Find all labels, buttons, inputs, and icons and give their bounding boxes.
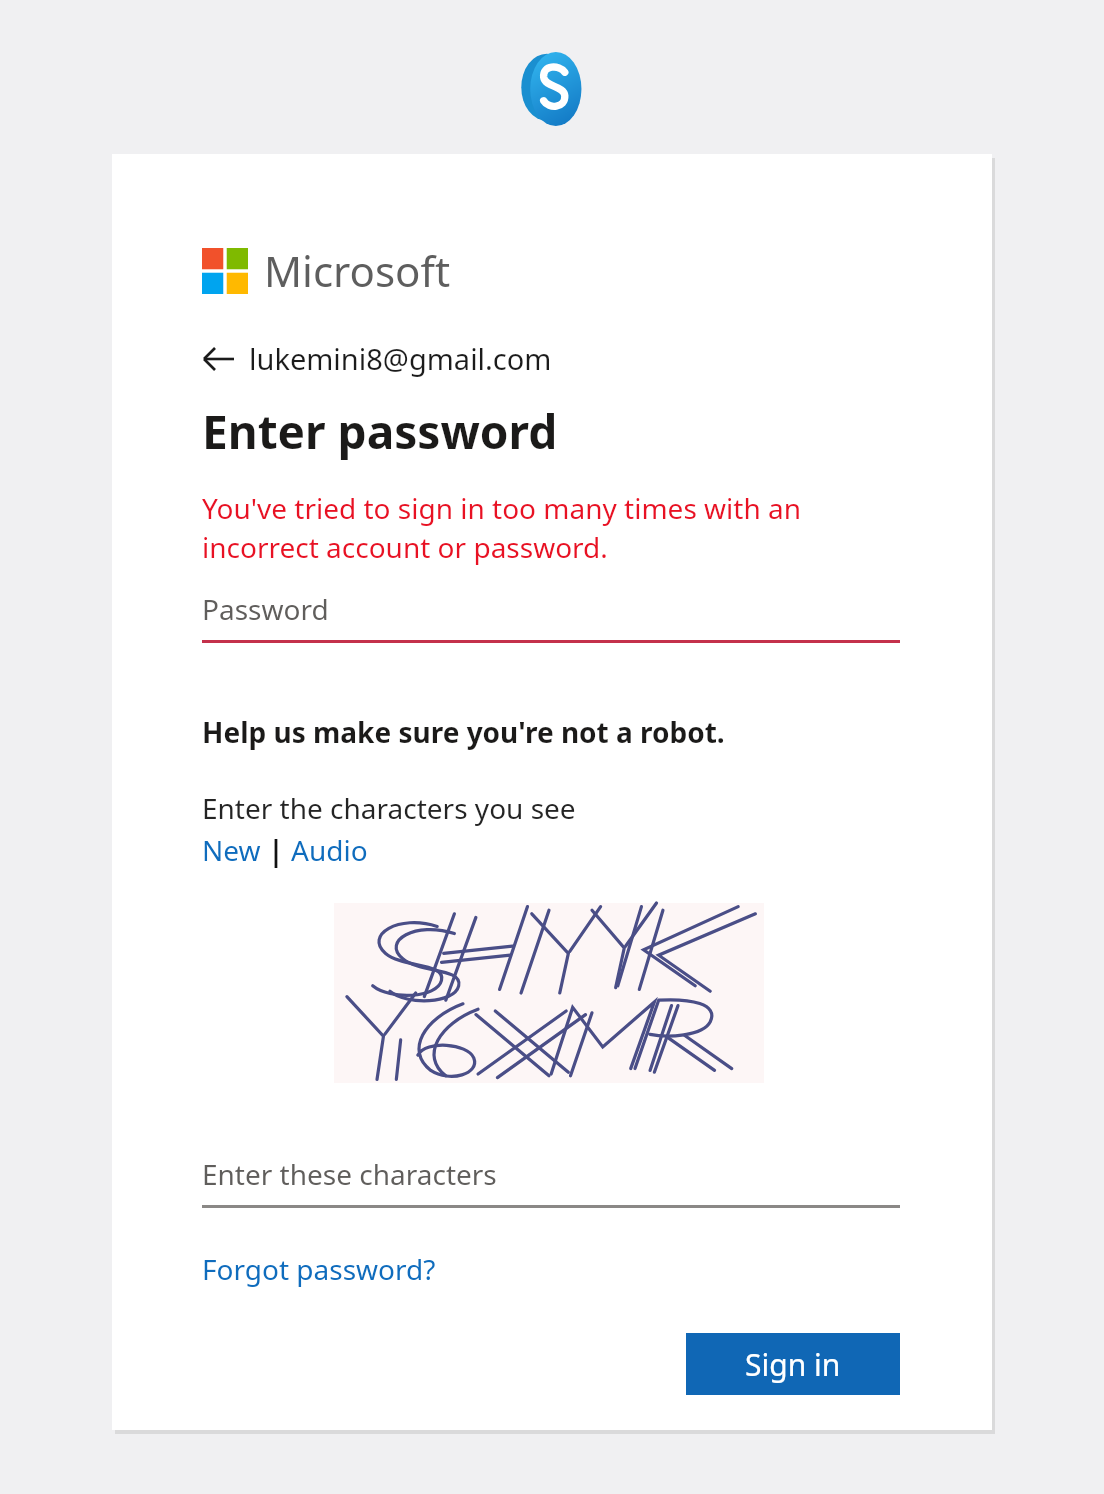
button[interactable]: New <box>202 831 261 869</box>
staticText: Enter these characters <box>202 1155 497 1193</box>
staticText: Password <box>202 590 329 628</box>
staticText: Sign in <box>745 1344 841 1385</box>
staticText: Microsoft <box>264 242 451 299</box>
staticText: Forgot password? <box>202 1250 436 1288</box>
staticText: Enter password <box>202 400 558 463</box>
staticText: You've tried to sign in too many times w… <box>202 489 842 566</box>
staticText: lukemini8@gmail.com <box>249 339 552 378</box>
staticText: | <box>261 831 291 869</box>
staticText: Help us make sure you're not a robot. <box>202 713 725 751</box>
other: Back <box>202 344 240 374</box>
staticText: New <box>202 831 261 869</box>
button[interactable]: Audio <box>291 831 368 869</box>
other: CAPTCHA image <box>334 903 764 1083</box>
other: Skype <box>520 47 584 131</box>
button[interactable]: Forgot password? <box>202 1250 436 1288</box>
button[interactable]: Back <box>202 339 560 378</box>
button[interactable]: Sign in <box>686 1333 900 1395</box>
staticText: Audio <box>291 831 368 869</box>
staticText: Enter the characters you see <box>202 789 576 827</box>
